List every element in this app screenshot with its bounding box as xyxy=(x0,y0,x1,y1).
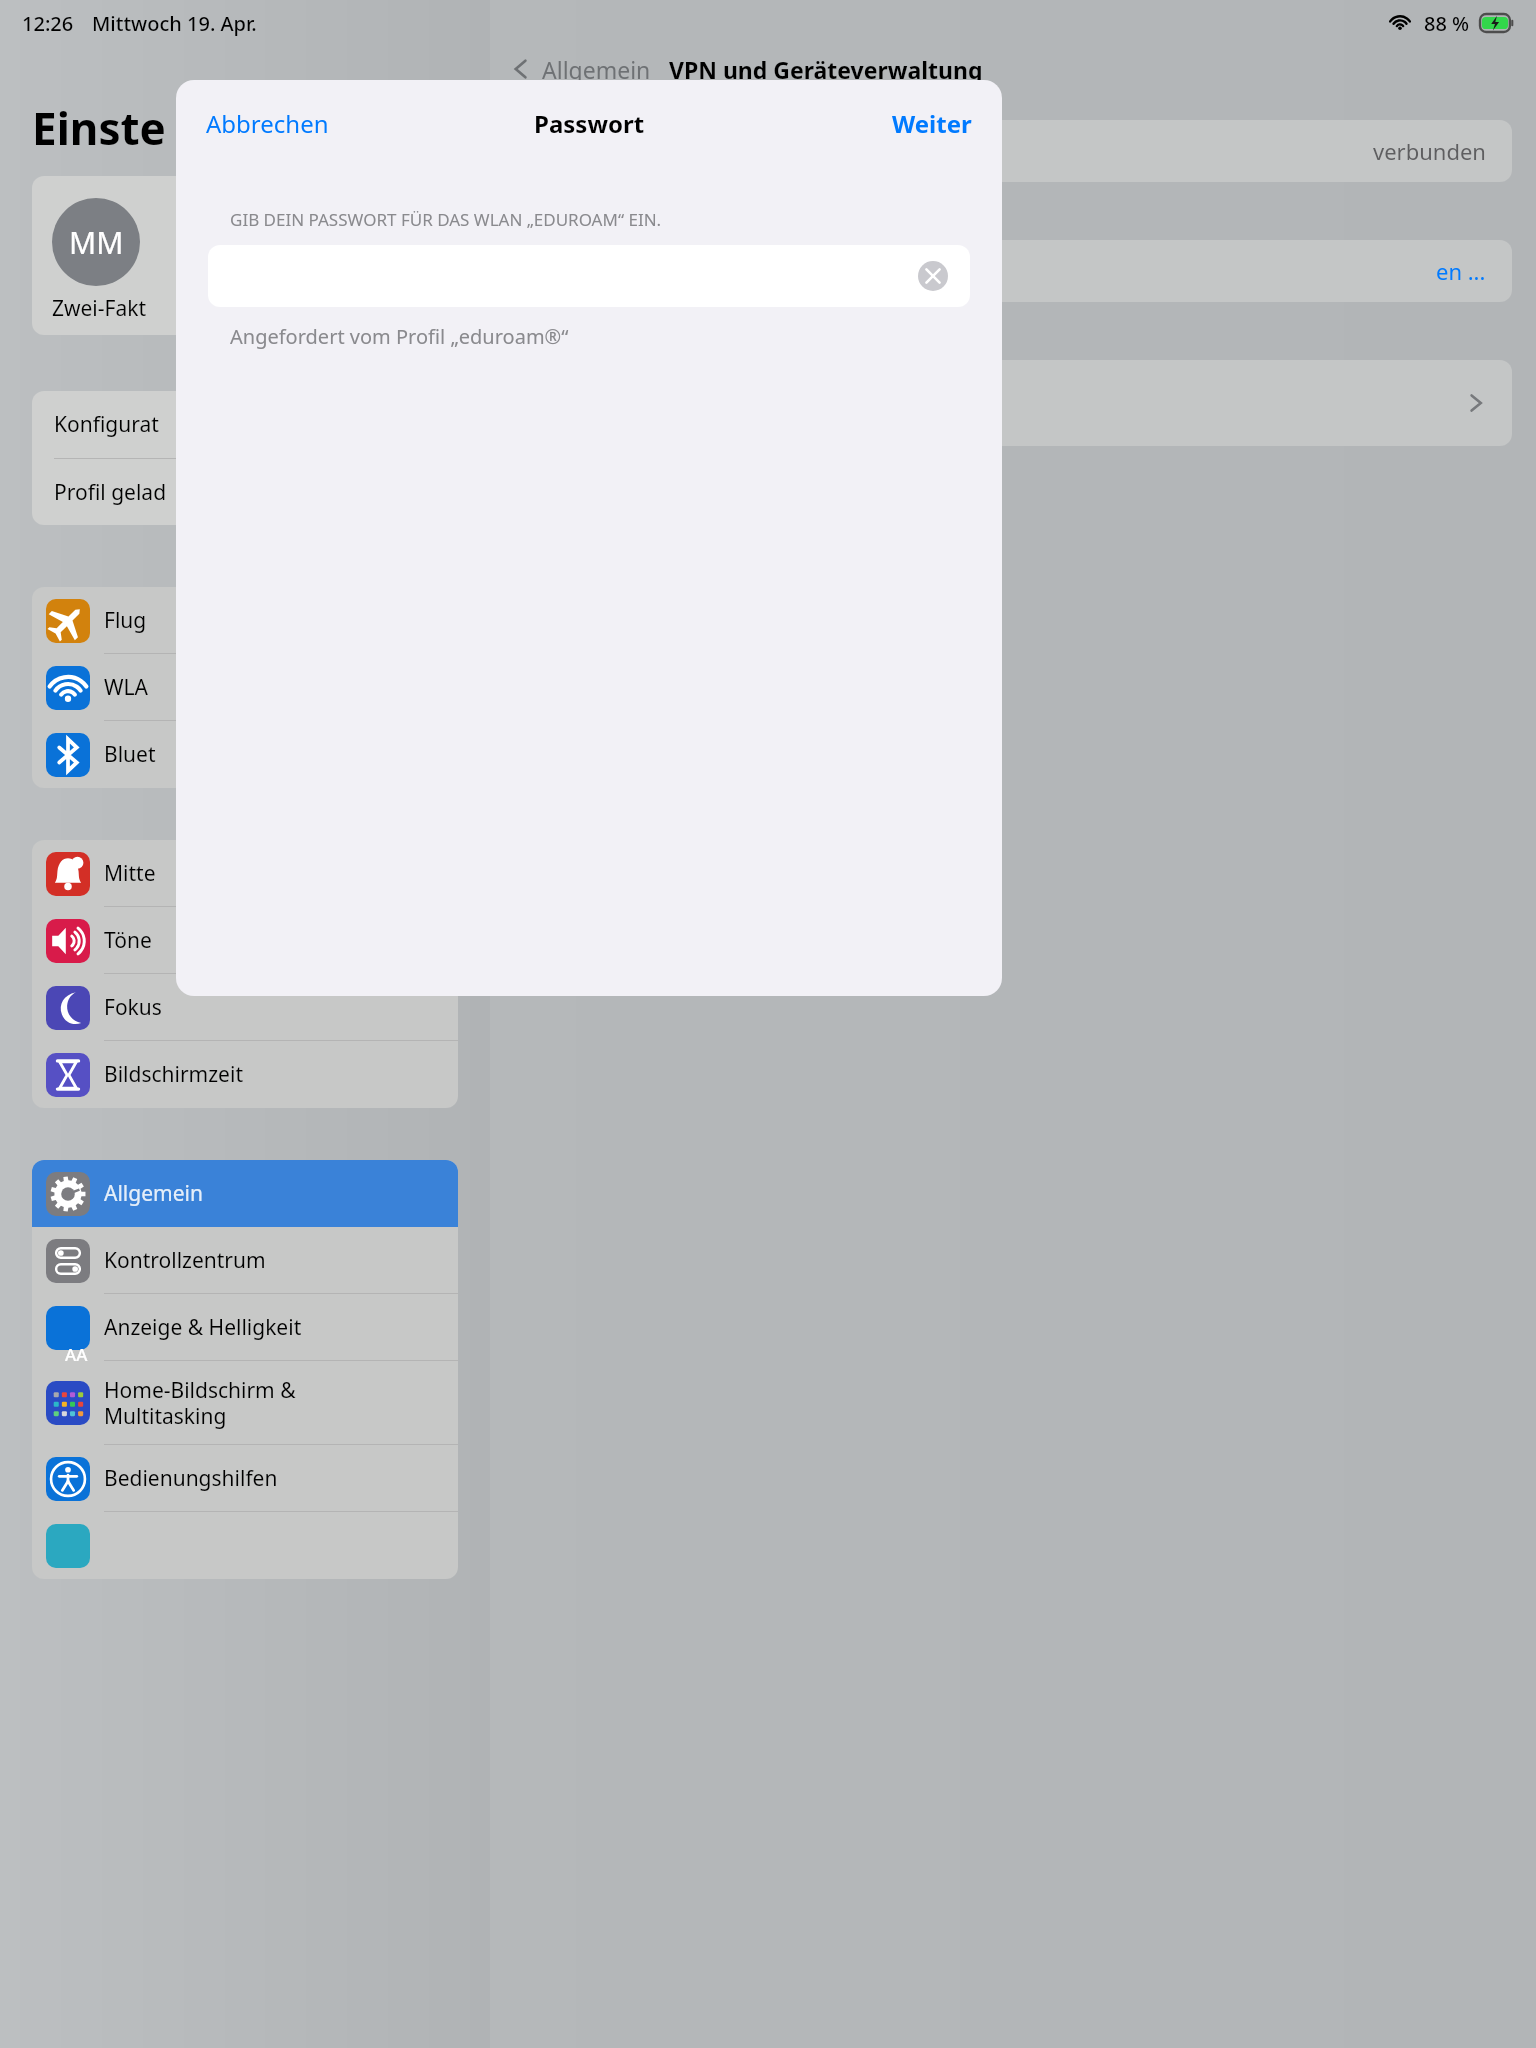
button[interactable]: Bluet xyxy=(32,721,458,788)
staticText: GIB DEIN PASSWORT FÜR DAS WLAN „EDUROAM“… xyxy=(230,208,662,231)
staticText: Angefordert vom Profil „eduroam®“ xyxy=(230,323,569,350)
staticText: Profil gelad xyxy=(54,478,167,507)
staticText: Weiter xyxy=(892,107,972,140)
button[interactable]: en ... xyxy=(510,240,1512,302)
staticText: Flug xyxy=(104,606,446,635)
staticText: Mittwoch 19. Apr. xyxy=(92,10,257,37)
staticText: Abbrechen xyxy=(206,107,329,140)
button[interactable]: Fokus xyxy=(32,974,458,1041)
button[interactable]: Kontrollzentrum xyxy=(32,1227,458,1294)
staticText: Bildschirmzeit xyxy=(104,1060,446,1089)
staticText: Mitte xyxy=(104,859,446,888)
button[interactable]: Home-Bildschirm & Multitasking xyxy=(32,1361,458,1445)
staticText: AA xyxy=(65,1343,88,1366)
staticText: 88 % xyxy=(1424,10,1470,37)
staticText: WLA xyxy=(104,673,446,702)
staticText: Allgemein xyxy=(104,1179,446,1208)
button[interactable]: Bedienungshilfen xyxy=(32,1445,458,1512)
button[interactable]: Weiter xyxy=(862,93,1002,154)
staticText: en ... xyxy=(1436,256,1486,286)
staticText: Einste xyxy=(32,98,166,158)
staticText: Konfigurat xyxy=(54,410,159,439)
staticText: Kontrollzentrum xyxy=(104,1246,446,1275)
button[interactable]: verbunden xyxy=(510,120,1512,182)
button[interactable]: Clear text xyxy=(918,261,948,291)
button[interactable] xyxy=(510,360,1512,446)
button[interactable]: Anzeige & Helligkeit xyxy=(32,1294,458,1361)
staticText: Töne xyxy=(104,926,446,955)
button[interactable]: WLA xyxy=(32,654,458,721)
staticText: verbunden xyxy=(1373,136,1486,166)
button[interactable]: Back xyxy=(510,58,532,80)
staticText: Home-Bildschirm & Multitasking xyxy=(104,1376,446,1430)
staticText: Anzeige & Helligkeit xyxy=(104,1313,446,1342)
button[interactable]: Allgemein xyxy=(32,1160,458,1227)
staticText: Allgemein xyxy=(542,54,651,85)
button[interactable]: Flug xyxy=(32,587,458,654)
button[interactable]: Töne xyxy=(32,907,458,974)
button[interactable]: Bildschirmzeit xyxy=(32,1041,458,1108)
staticText: MM xyxy=(69,222,124,263)
staticText: Fokus xyxy=(104,993,446,1022)
staticText: 12:26 xyxy=(22,10,74,37)
button[interactable]: Profil gelad xyxy=(32,459,458,525)
staticText: Bedienungshilfen xyxy=(104,1464,446,1493)
button[interactable]: Konfigurat xyxy=(32,391,458,458)
staticText: Passwort xyxy=(534,107,645,140)
button[interactable]: Mitte xyxy=(32,840,458,907)
button[interactable] xyxy=(32,1512,458,1579)
button[interactable]: Abbrechen xyxy=(176,93,359,154)
staticText: Bluet xyxy=(104,740,446,769)
button[interactable]: Clear text xyxy=(208,245,970,307)
button[interactable]: MM xyxy=(32,176,458,335)
staticText: VPN und Geräteverwaltung xyxy=(669,54,983,85)
staticText: Zwei-Fakt xyxy=(52,294,147,323)
